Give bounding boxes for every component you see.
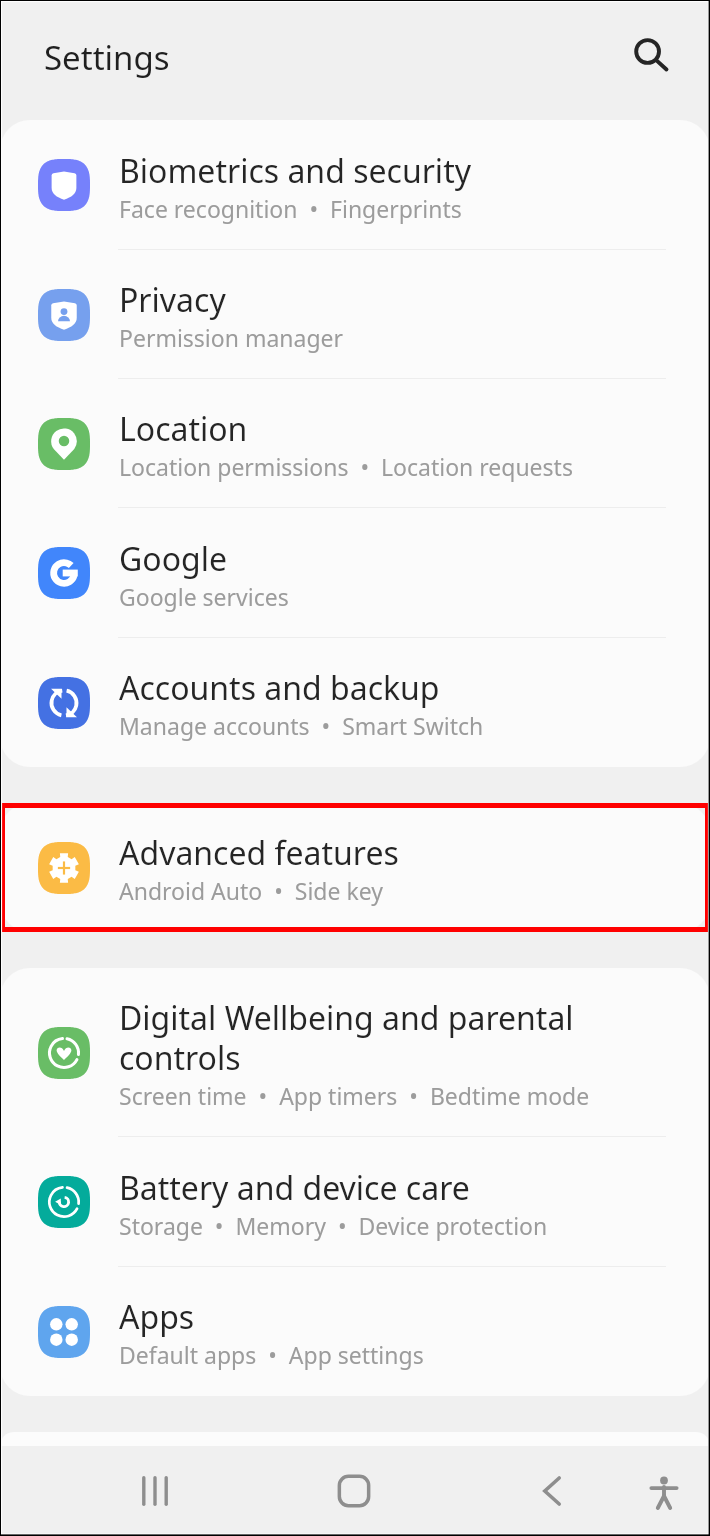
staticText: Advanced features [119, 831, 399, 875]
staticText: Google services [119, 581, 289, 612]
button[interactable]: Biometrics and security [0, 120, 710, 250]
button[interactable]: Location [0, 379, 710, 508]
button[interactable]: Advanced features [0, 803, 710, 932]
button[interactable]: Recent apps [115, 1446, 195, 1536]
staticText: Permission manager [119, 322, 344, 353]
button[interactable]: Google [0, 508, 710, 638]
staticText: Default apps • App settings [119, 1339, 424, 1370]
staticText: Android Auto • Side key [119, 875, 383, 906]
staticText: Battery and device care [119, 1166, 470, 1210]
staticText: Location permissions • Location requests [119, 451, 573, 482]
button[interactable]: Accounts and backup [0, 638, 710, 767]
button[interactable]: Battery and device care [0, 1137, 710, 1267]
button[interactable]: Apps [0, 1267, 710, 1396]
staticText: Accounts and backup [119, 666, 440, 710]
button[interactable]: Accessibility [624, 1446, 704, 1536]
staticText: Settings [44, 35, 170, 80]
button[interactable]: Back [512, 1446, 592, 1536]
staticText: Face recognition • Fingerprints [119, 193, 462, 224]
button[interactable]: Digital Wellbeing and parental controls [0, 968, 710, 1137]
button[interactable]: Home [314, 1446, 394, 1536]
staticText: Screen time • App timers • Bedtime mode [119, 1080, 590, 1111]
staticText: Biometrics and security [119, 149, 472, 193]
staticText: Apps [119, 1295, 195, 1339]
staticText: Privacy [119, 278, 226, 322]
staticText: Digital Wellbeing and parental controls [119, 996, 574, 1080]
staticText: Manage accounts • Smart Switch [119, 710, 484, 741]
button[interactable]: Search [611, 15, 685, 89]
staticText: Google [119, 537, 228, 581]
button[interactable]: Privacy [0, 250, 710, 379]
staticText: Storage • Memory • Device protection [119, 1210, 548, 1241]
staticText: Location [119, 407, 248, 451]
